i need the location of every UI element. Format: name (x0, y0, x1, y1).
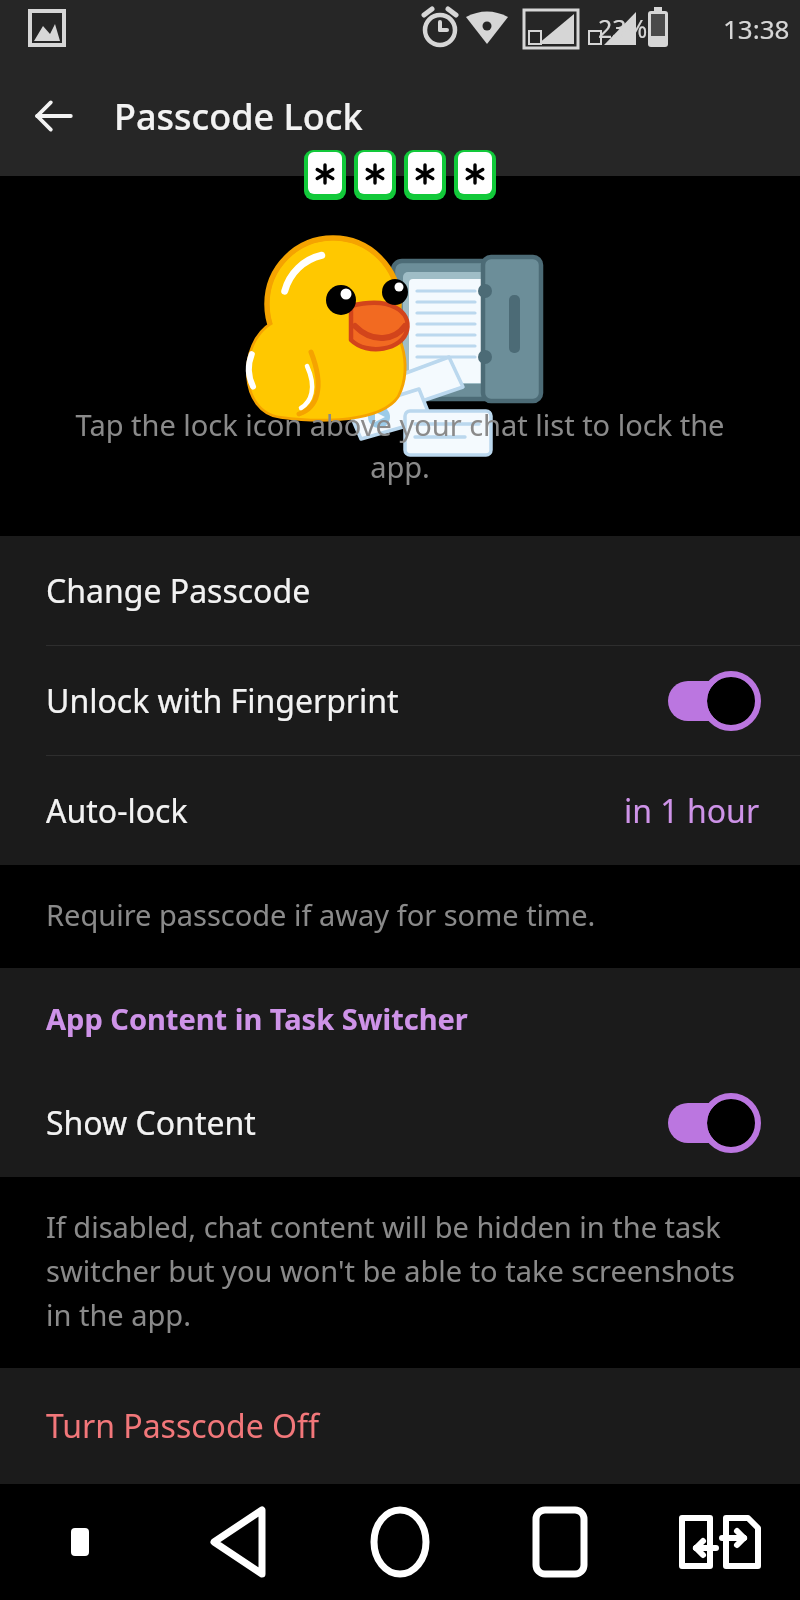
button[interactable]: Recent apps (480, 1484, 640, 1600)
staticText: Unlock with Fingerprint (46, 679, 399, 723)
staticText: Show Content (46, 1101, 256, 1145)
button[interactable]: Change Passcode (0, 536, 800, 645)
button[interactable]: Back (160, 1484, 320, 1600)
staticText: If disabled, chat content will be hidden… (46, 1207, 760, 1334)
staticText: App Content in Task Switcher (46, 999, 468, 1038)
staticText: Turn Passcode Off (46, 1404, 320, 1448)
button[interactable]: Keyboard indicator (0, 1484, 160, 1600)
staticText: Require passcode if away for some time. (46, 895, 596, 934)
button[interactable]: Toggle (668, 1095, 760, 1151)
staticText: Passcode Lock (114, 92, 363, 141)
button[interactable]: Unlock with Fingerprint (0, 646, 800, 755)
button[interactable]: Back (20, 82, 88, 150)
button[interactable]: Switch screen (640, 1484, 800, 1600)
staticText: in 1 hour (624, 789, 760, 833)
staticText: 13:38 (723, 11, 790, 46)
button[interactable]: Auto-lock (0, 756, 800, 865)
button[interactable]: Home (320, 1484, 480, 1600)
staticText: 23% (598, 11, 648, 45)
button[interactable]: Turn Passcode Off (0, 1368, 800, 1484)
staticText: Tap the lock icon above your chat list t… (60, 405, 740, 486)
button[interactable]: Toggle (668, 673, 760, 729)
staticText: Change Passcode (46, 569, 311, 613)
button[interactable]: Show Content (0, 1068, 800, 1177)
staticText: Auto-lock (46, 789, 188, 833)
